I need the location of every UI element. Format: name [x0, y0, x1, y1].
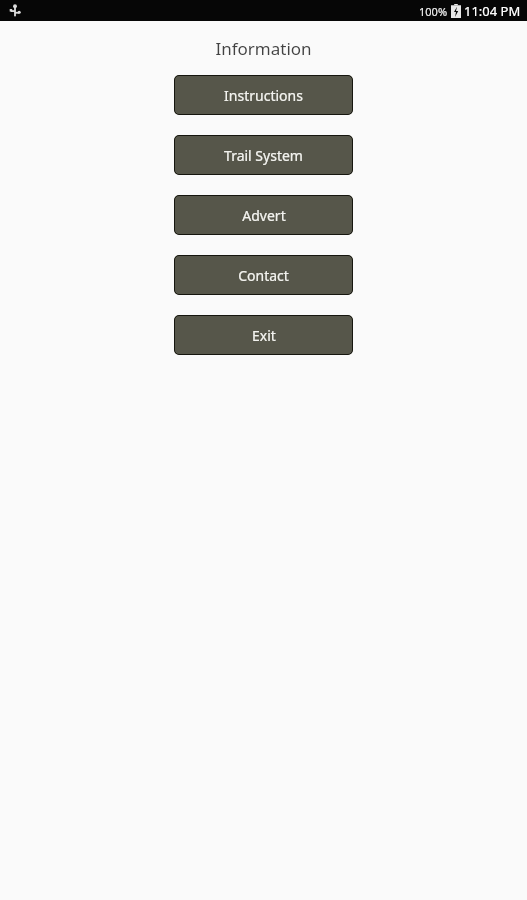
button[interactable]: Trail System: [174, 135, 353, 175]
button[interactable]: Contact: [174, 255, 353, 295]
staticText: Advert: [242, 206, 286, 225]
staticText: Instructions: [224, 86, 303, 105]
button[interactable]: Instructions: [174, 75, 353, 115]
button[interactable]: Advert: [174, 195, 353, 235]
staticText: Trail System: [224, 146, 303, 165]
button[interactable]: Exit: [174, 315, 353, 355]
staticText: Information: [215, 37, 312, 60]
other: Battery charging: [451, 4, 461, 18]
staticText: Contact: [238, 266, 289, 285]
staticText: 100%: [419, 4, 448, 19]
staticText: 11:04 PM: [464, 2, 521, 20]
staticText: Exit: [252, 326, 276, 345]
other: USB connected: [8, 4, 22, 18]
